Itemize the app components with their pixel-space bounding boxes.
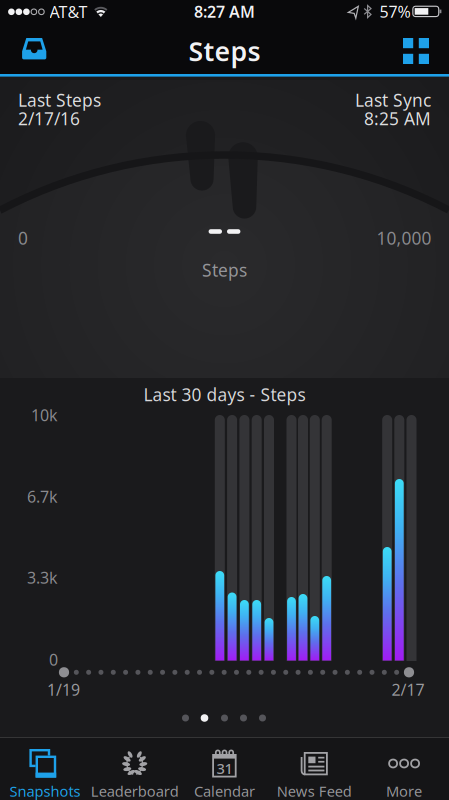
staticText: 8:25 AM <box>364 107 431 130</box>
staticText: Leaderboard <box>91 781 179 800</box>
staticText: 1/19 <box>47 679 80 700</box>
staticText: Calendar <box>194 781 255 800</box>
button[interactable]: Leaderboard <box>90 737 179 799</box>
staticText: 0 <box>49 649 58 670</box>
staticText: Steps <box>188 33 260 69</box>
button[interactable]: More <box>360 737 449 799</box>
staticText: 0 <box>18 226 28 249</box>
staticText: 6.7k <box>27 486 58 507</box>
button[interactable]: News Feed <box>270 737 359 799</box>
staticText: 2/17/16 <box>18 107 80 130</box>
button[interactable] <box>19 36 49 64</box>
staticText: 2/17 <box>391 679 424 700</box>
staticText: Snapshots <box>9 781 80 800</box>
staticText: 10k <box>31 404 58 426</box>
staticText: 3.3k <box>27 567 58 588</box>
button[interactable] <box>403 38 429 64</box>
staticText: 8:27 AM <box>194 1 255 22</box>
staticText: News Feed <box>277 781 352 800</box>
button[interactable]: 31 <box>180 737 269 799</box>
staticText: AT&T <box>49 1 87 22</box>
staticText: Steps <box>202 258 247 281</box>
staticText: 10,000 <box>376 226 431 249</box>
staticText: More <box>386 781 422 800</box>
staticText: Last Steps <box>18 88 101 111</box>
staticText: 57% <box>379 1 410 22</box>
staticText: Last Sync <box>355 88 431 111</box>
button[interactable]: Snapshots <box>0 737 89 799</box>
staticText: Last 30 days - Steps <box>143 383 305 406</box>
staticText: 31 <box>216 759 232 778</box>
